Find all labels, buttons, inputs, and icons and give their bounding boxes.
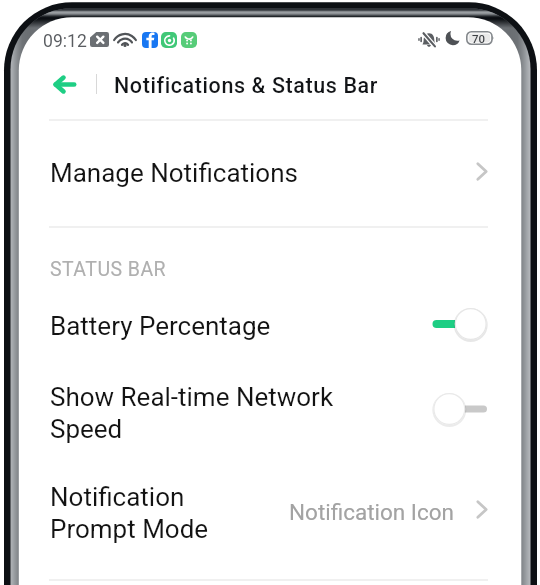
staticText: Notification Prompt Mode <box>50 482 209 545</box>
button[interactable]: Back <box>42 62 86 106</box>
staticText: Battery Percentage <box>50 311 271 341</box>
button[interactable]: Show Real-time Network Speed <box>21 360 519 458</box>
button[interactable]: Battery Percentage switch <box>432 306 488 342</box>
staticText: STATUS BAR <box>50 258 167 281</box>
button[interactable]: Show Real-time Network Speed switch <box>432 391 488 427</box>
staticText: Notifications & Status Bar <box>114 73 378 98</box>
staticText: 09:12 <box>43 31 87 52</box>
staticText: Manage Notifications <box>50 158 298 188</box>
button[interactable]: Manage Notifications <box>21 123 519 223</box>
staticText: 70 <box>472 32 486 45</box>
staticText: Show Real-time Network Speed <box>50 382 334 445</box>
staticText: Notification Icon <box>289 499 455 525</box>
button[interactable]: Notification Prompt Mode <box>21 462 519 562</box>
button[interactable]: Battery Percentage <box>21 290 519 358</box>
